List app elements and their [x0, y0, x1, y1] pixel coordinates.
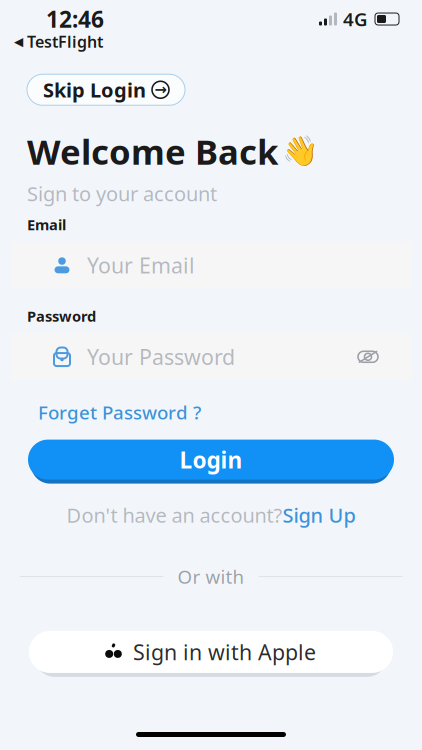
staticText: Your Email [87, 251, 195, 279]
staticText: Forget Password ? [38, 400, 201, 425]
button[interactable]: Your Email [11, 242, 411, 288]
button[interactable]: Your Password [11, 334, 411, 380]
button[interactable]: Login [28, 440, 394, 484]
staticText: Don't have an account? [66, 502, 282, 528]
staticText: → [154, 81, 166, 98]
staticText: Skip Login [43, 76, 146, 103]
staticText: ◀ [14, 35, 23, 48]
staticText: Or with [177, 564, 244, 589]
staticText: Sign in with Apple [133, 638, 316, 666]
staticText: Email [27, 215, 66, 234]
staticText: Password [27, 306, 96, 326]
staticText: 4G [343, 7, 368, 31]
staticText: 12:46 [46, 4, 104, 34]
staticText: Your Password [87, 343, 235, 371]
staticText: 👋 [282, 134, 319, 168]
button[interactable]: Forget Password ? [38, 396, 201, 429]
button[interactable]: Sign in with Apple [29, 631, 393, 677]
staticText: Login [179, 444, 242, 475]
staticText: Welcome Back [27, 128, 278, 174]
button[interactable]: Don't have an account? [66, 498, 355, 532]
button[interactable]: Skip Login [27, 74, 185, 105]
staticText: Sign to your account [27, 180, 217, 207]
staticText: TestFlight [23, 31, 103, 52]
staticText: Sign Up [282, 502, 355, 528]
